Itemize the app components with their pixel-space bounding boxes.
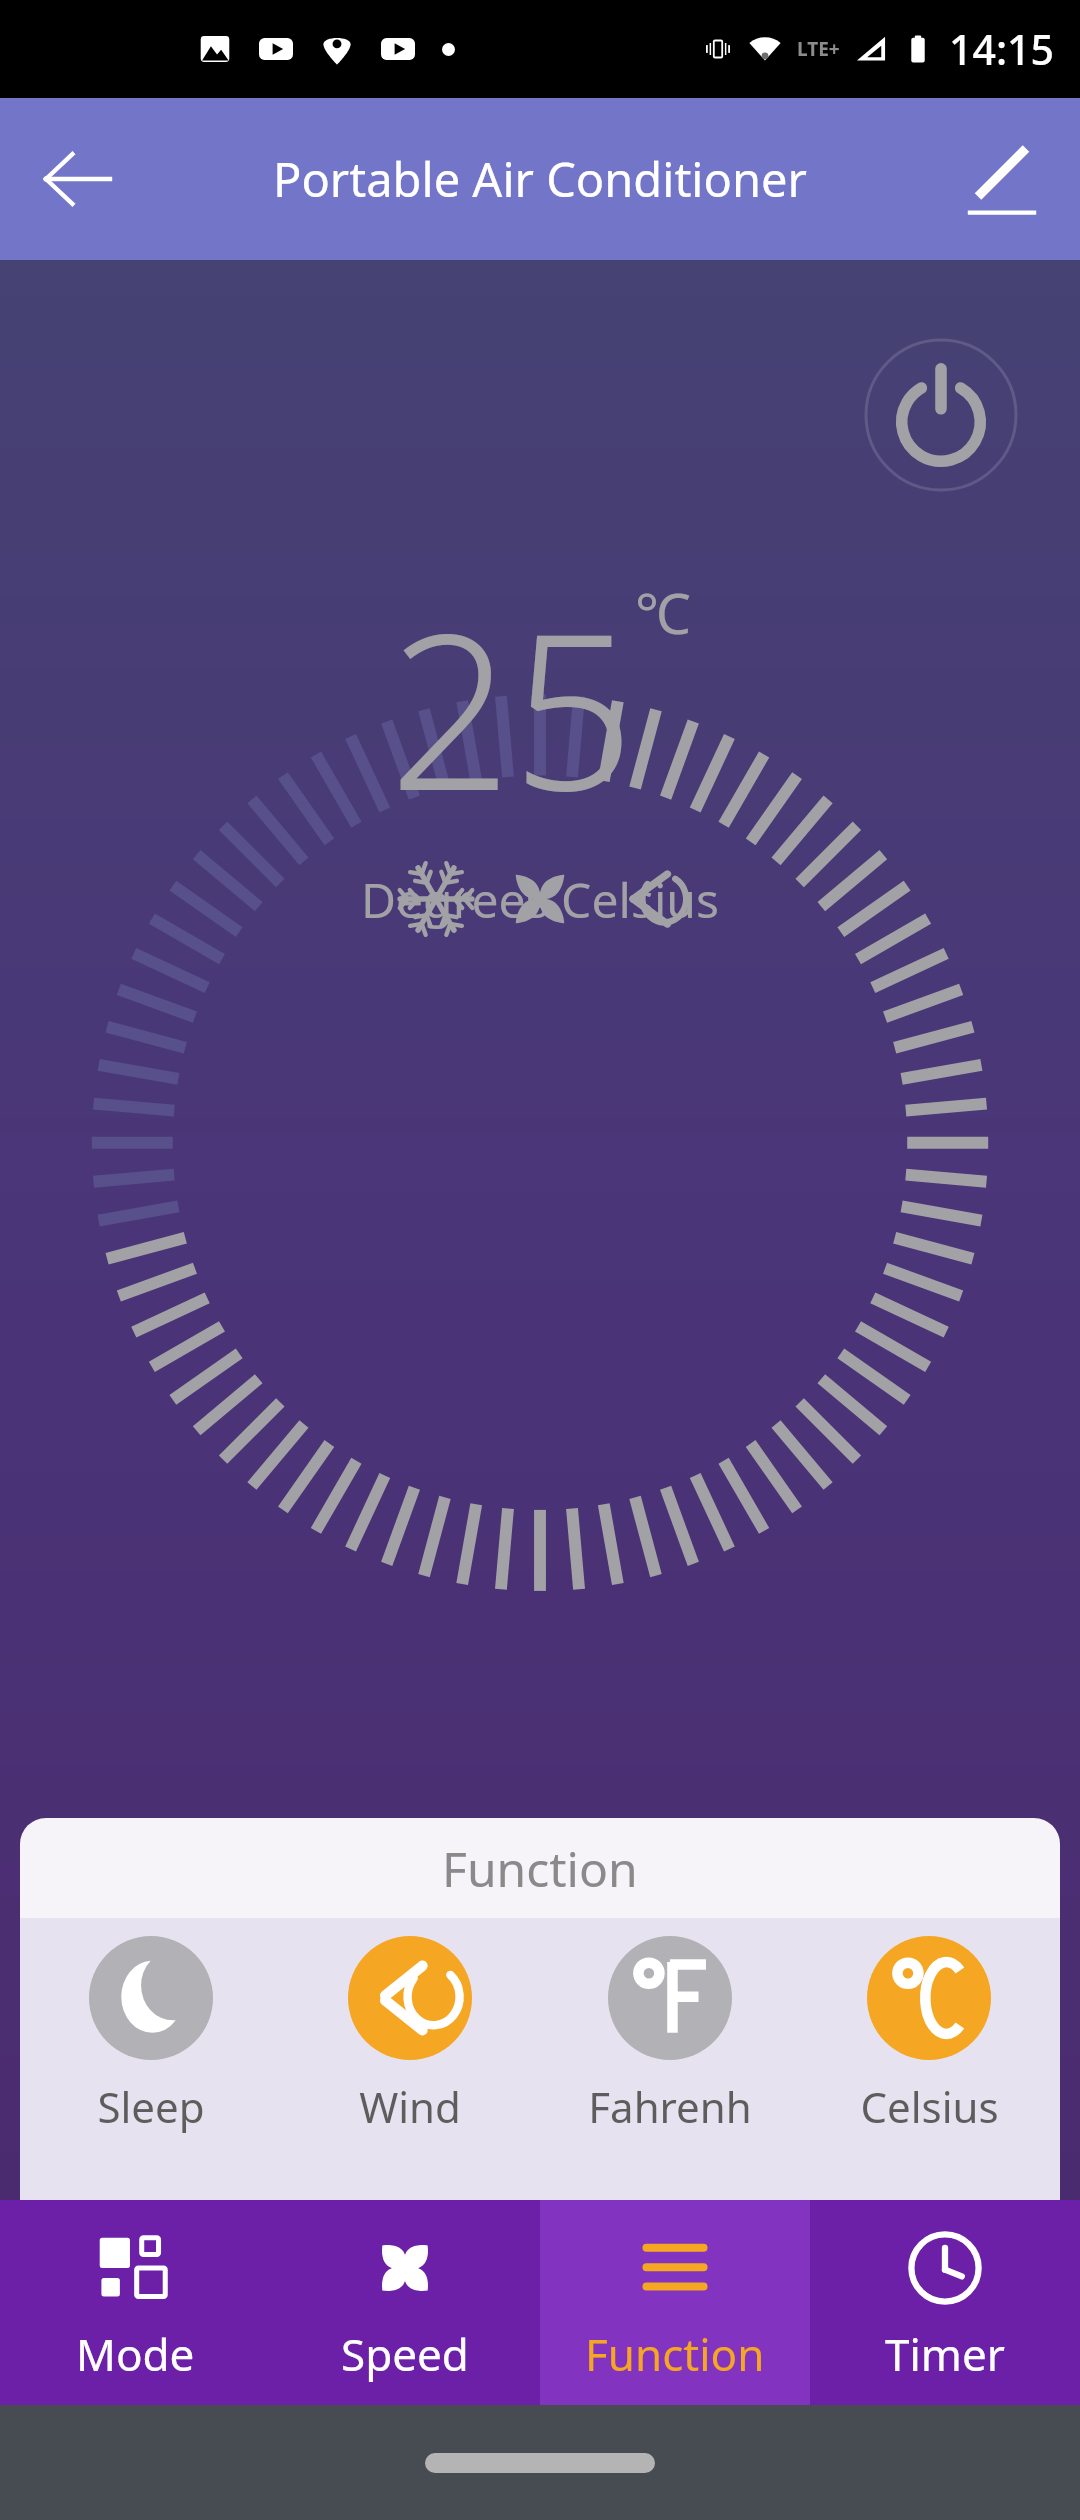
button[interactable]: Fahrenh… bbox=[575, 1936, 765, 2135]
button[interactable]: Timer bbox=[810, 2200, 1080, 2405]
staticText: Wind bbox=[359, 2078, 461, 2135]
staticText: Sleep bbox=[97, 2078, 205, 2135]
staticText: Function bbox=[442, 1836, 638, 1901]
staticText: Mode bbox=[76, 2324, 195, 2384]
button[interactable]: Speed bbox=[270, 2200, 540, 2405]
button[interactable]: Power bbox=[864, 338, 1018, 492]
staticText: Fahrenh… bbox=[575, 2078, 765, 2135]
button[interactable]: Wind bbox=[315, 1936, 505, 2135]
staticText: Timer bbox=[885, 2324, 1005, 2384]
staticText: Speed bbox=[341, 2324, 469, 2384]
button[interactable]: Increase bbox=[553, 1990, 1022, 2200]
staticText: LTE+ bbox=[797, 36, 840, 62]
staticText: Degrees Celsius bbox=[361, 867, 719, 932]
staticText: Function bbox=[585, 2324, 765, 2384]
staticText: ℃ bbox=[635, 574, 691, 650]
button[interactable]: Celsius bbox=[834, 1936, 1024, 2135]
staticText: 14:15 bbox=[949, 21, 1054, 77]
staticText: 25 bbox=[389, 560, 635, 853]
button[interactable]: Function bbox=[540, 2200, 810, 2405]
button[interactable]: Decrease bbox=[58, 1990, 527, 2200]
staticText: Celsius bbox=[860, 2078, 999, 2135]
staticText: Portable Air Conditioner bbox=[273, 147, 807, 211]
button[interactable]: Mode bbox=[0, 2200, 270, 2405]
button[interactable]: Back bbox=[38, 139, 118, 219]
button[interactable]: Sleep bbox=[56, 1936, 246, 2135]
button[interactable]: Edit bbox=[962, 139, 1042, 219]
